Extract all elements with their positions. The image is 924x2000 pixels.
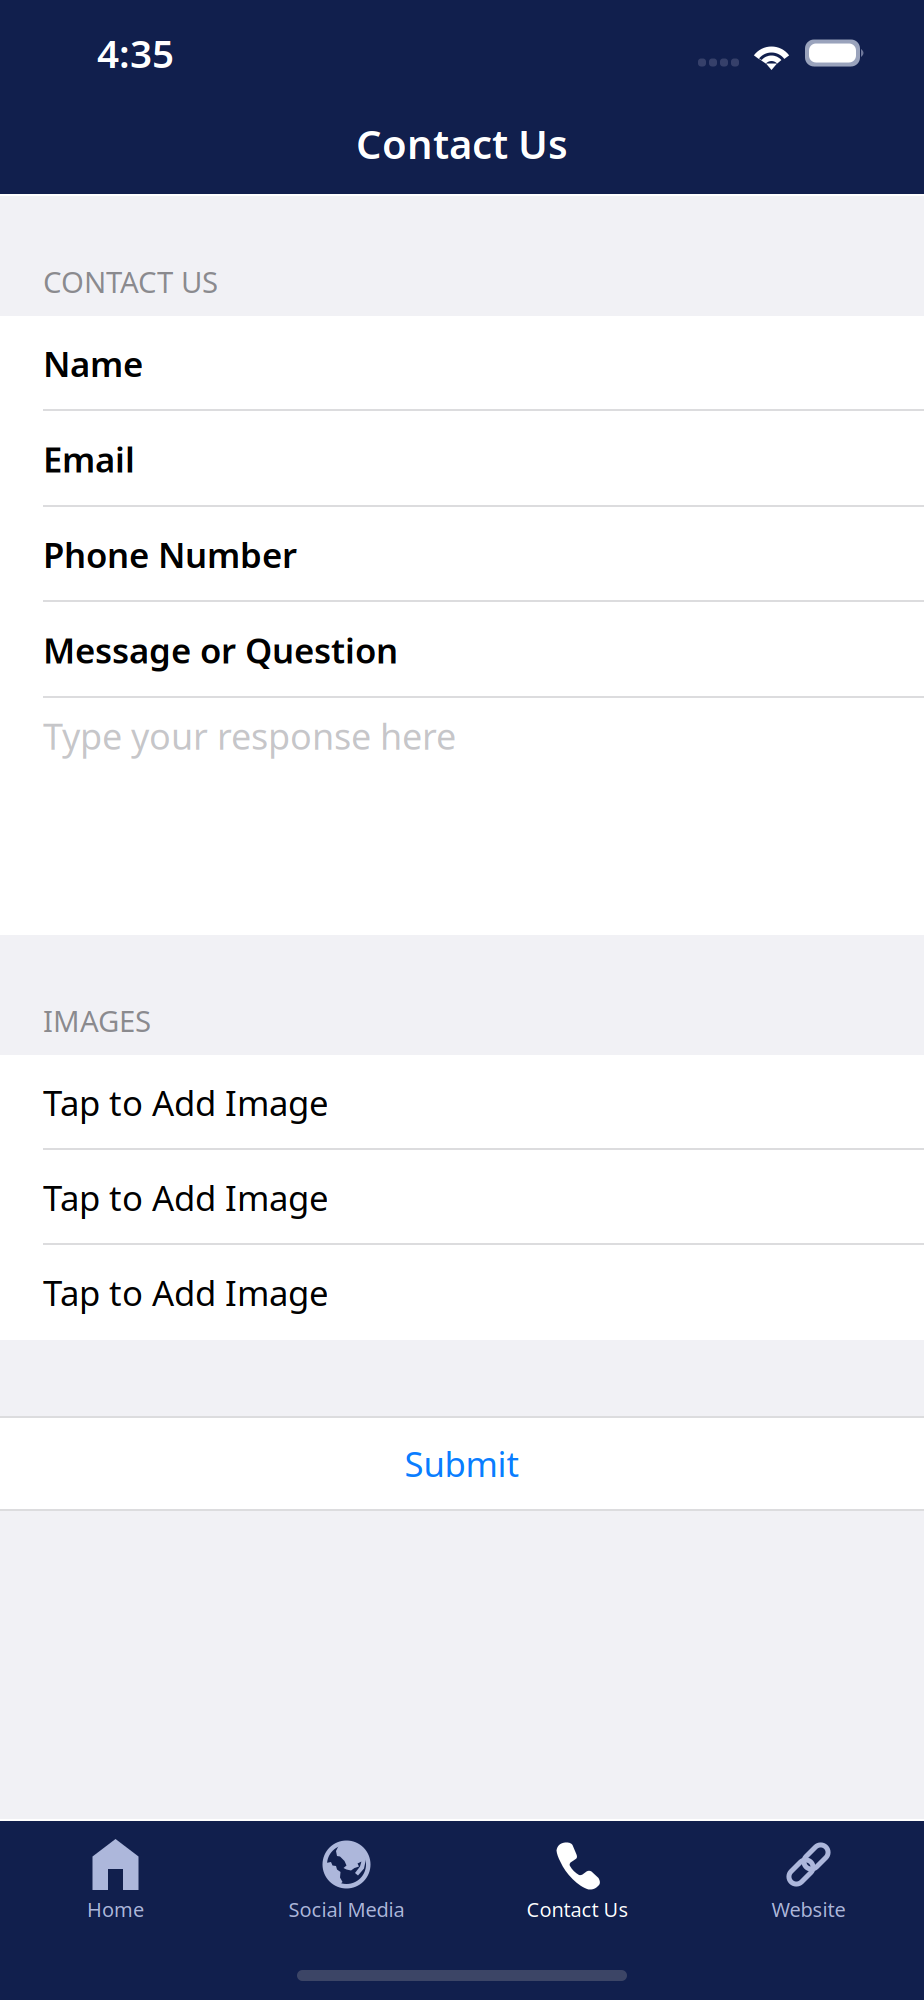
staticText: CONTACT US [43,262,218,301]
staticText: Contact Us [526,1896,628,1923]
staticText: Tap to Add Image [43,1079,329,1125]
staticText: Tap to Add Image [43,1269,329,1315]
button[interactable]: Website [693,1838,924,1933]
staticText: Contact Us [356,117,568,170]
staticText: Website [771,1896,845,1923]
staticText: Home [87,1896,144,1923]
button[interactable]: Tap to Add Image [0,1245,924,1340]
staticText: Tap to Add Image [43,1174,329,1220]
button[interactable]: Email [0,411,924,507]
staticText: IMAGES [43,1001,151,1040]
staticText: Phone Number [43,531,297,577]
button[interactable]: Tap to Add Image [0,1150,924,1245]
button[interactable]: Contact Us [462,1838,693,1933]
staticText: Social Media [288,1896,404,1923]
staticText: Email [43,436,135,482]
button[interactable]: Tap to Add Image [0,1055,924,1150]
staticText: Type your response here [43,712,456,760]
button[interactable]: Phone Number [0,507,924,602]
button[interactable]: Name [0,316,924,411]
button[interactable]: Social Media [231,1838,462,1933]
button[interactable]: Message or Question [0,602,924,698]
staticText: 4:35 [97,27,174,79]
button[interactable]: Home [0,1838,231,1933]
staticText: Message or Question [43,627,398,673]
staticText: Submit [404,1440,519,1486]
staticText: Name [43,340,143,386]
button[interactable]: Submit [0,1416,924,1511]
